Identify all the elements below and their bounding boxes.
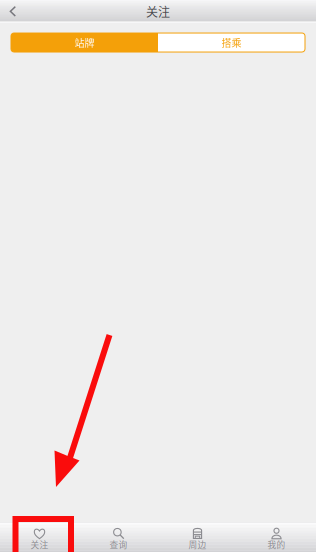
staticText: 周边: [188, 538, 206, 551]
button[interactable]: 周边: [158, 522, 237, 552]
staticText: 站牌: [74, 35, 94, 50]
staticText: 搭乘: [221, 35, 241, 50]
button[interactable]: 搭乘: [158, 33, 305, 52]
staticText: 关注: [146, 3, 170, 20]
staticText: 关注: [30, 538, 48, 551]
button[interactable]: 我的: [237, 522, 316, 552]
button[interactable]: 查询: [79, 522, 158, 552]
staticText: 查询: [109, 538, 127, 551]
staticText: 我的: [267, 538, 285, 551]
button[interactable]: 站牌: [11, 33, 158, 52]
button[interactable]: 关注: [0, 522, 79, 552]
button[interactable]: Back: [0, 0, 40, 22]
